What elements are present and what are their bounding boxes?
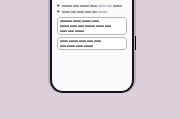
button[interactable] [57,3,127,8]
button[interactable] [57,9,127,14]
button[interactable] [57,37,127,50]
button[interactable] [57,17,127,35]
